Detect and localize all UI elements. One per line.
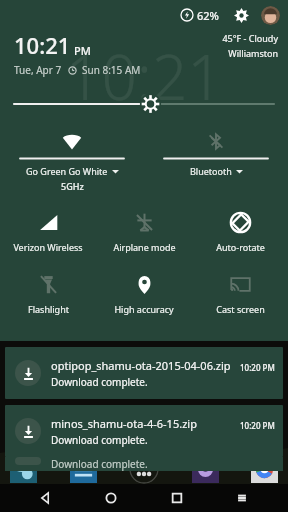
button[interactable]: Bluetooth xyxy=(144,131,288,193)
staticText: Sun 8:15 AM xyxy=(82,63,141,77)
button[interactable]: Download complete. xyxy=(5,457,283,471)
staticText: PM xyxy=(74,43,91,58)
button[interactable]: Recent apps xyxy=(157,484,197,512)
staticText: minos_shamu-ota-4-6-15.zip xyxy=(51,416,197,431)
staticText: 10:20 PM xyxy=(240,420,275,431)
staticText: Download complete. xyxy=(51,375,148,389)
button[interactable]: Go Green Go White xyxy=(0,131,144,193)
button[interactable]: Home xyxy=(91,484,131,512)
button[interactable]: App xyxy=(192,456,219,483)
staticText: 10:20 PM xyxy=(240,362,275,373)
button[interactable]: minos_shamu-ota-4-6-15.zip xyxy=(5,405,283,457)
button[interactable]: Flashlight xyxy=(0,267,96,329)
button[interactable]: Settings xyxy=(231,5,251,25)
button[interactable]: Back xyxy=(26,484,66,512)
button[interactable]: All apps xyxy=(129,454,159,484)
button[interactable]: Cast screen xyxy=(192,267,288,329)
staticText: 62% xyxy=(197,8,219,23)
staticText: Verizon Wireless xyxy=(13,241,83,253)
button[interactable]: optipop_shamu-ota-2015-04-06.zip xyxy=(5,347,283,399)
button[interactable]: App xyxy=(10,456,37,483)
button[interactable]: Brightness xyxy=(14,91,274,117)
staticText: optipop_shamu-ota-2015-04-06.zip xyxy=(51,358,231,373)
staticText: Bluetooth xyxy=(190,165,232,177)
staticText: Auto-rotate xyxy=(216,241,265,253)
staticText: Go Green Go White xyxy=(26,165,108,177)
staticText: Williamston xyxy=(228,47,278,59)
staticText: Cast screen xyxy=(216,303,265,315)
staticText: 45°F - Cloudy xyxy=(222,32,278,44)
staticText: Airplane mode xyxy=(113,241,176,253)
staticText: 10:21 xyxy=(66,34,223,118)
staticText: High accuracy xyxy=(114,303,174,315)
button[interactable]: Auto-rotate xyxy=(192,205,288,267)
button[interactable]: App xyxy=(251,456,278,483)
button[interactable]: App xyxy=(70,456,97,483)
staticText: 5GHz xyxy=(61,180,84,192)
staticText: Download complete. xyxy=(51,433,148,447)
staticText: 10:21 xyxy=(14,30,71,60)
button[interactable]: User profile xyxy=(261,6,280,25)
button[interactable]: High accuracy xyxy=(96,267,192,329)
staticText: Tue, Apr 7 xyxy=(14,63,62,77)
button[interactable]: Airplane mode xyxy=(96,205,192,267)
staticText: Download complete. xyxy=(51,457,148,471)
staticText: Flashlight xyxy=(28,303,69,315)
button[interactable]: Menu xyxy=(222,484,262,512)
button[interactable]: Verizon Wireless xyxy=(0,205,96,267)
